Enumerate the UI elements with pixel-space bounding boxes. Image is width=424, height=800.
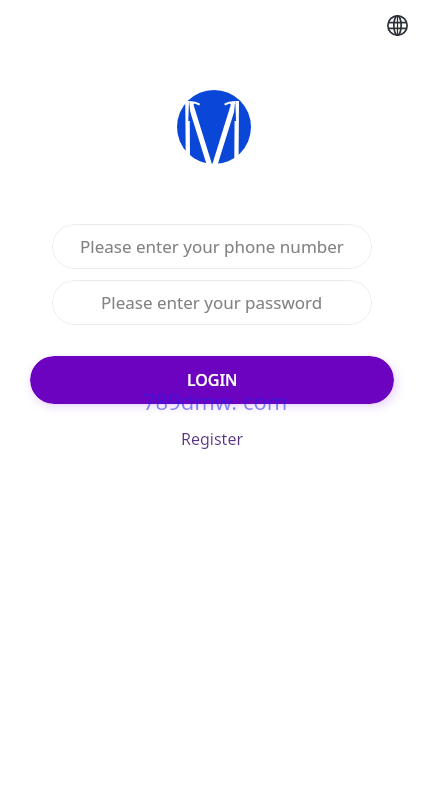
staticText: LOGIN [187, 369, 238, 391]
staticText: 789dmw. com [143, 386, 288, 416]
button[interactable]: Please enter your phone number [52, 224, 372, 269]
staticText: Please enter your phone number [80, 235, 344, 258]
button[interactable]: Register [175, 426, 250, 452]
button[interactable]: LOGIN [30, 356, 394, 404]
staticText: Register [181, 428, 244, 450]
button[interactable]: Change language [383, 11, 411, 39]
button[interactable]: Please enter your password [52, 280, 372, 325]
staticText: Please enter your password [101, 291, 323, 314]
